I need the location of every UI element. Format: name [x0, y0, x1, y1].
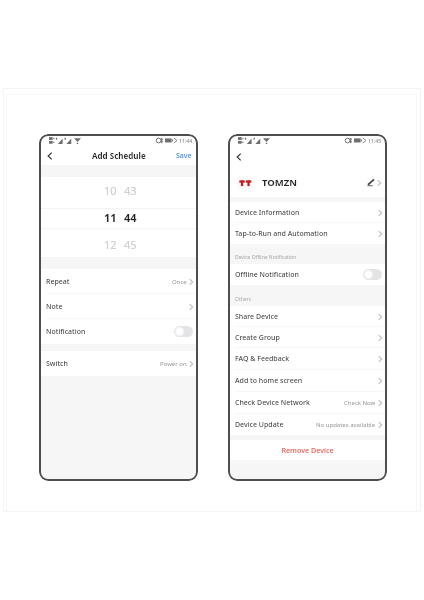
staticText: 12	[104, 237, 117, 252]
staticText: Save	[176, 151, 192, 161]
staticText: Power on	[160, 360, 187, 368]
button[interactable]: Remove Device	[228, 440, 387, 460]
staticText: Offline Notification	[235, 270, 299, 280]
button[interactable]: Toggle	[363, 269, 382, 280]
staticText: 44	[124, 210, 137, 225]
staticText: Device Offline Notification	[235, 254, 297, 261]
button[interactable]: Toggle	[174, 326, 193, 337]
staticText: Tap-to-Run and Automation	[235, 229, 328, 239]
staticText: 43	[124, 183, 137, 198]
button[interactable]: Save	[170, 148, 198, 164]
staticText: No updates available	[316, 421, 376, 429]
button[interactable]: Switch	[39, 351, 198, 376]
staticText: Notification	[46, 327, 86, 337]
button[interactable]: Offline Notification	[228, 264, 387, 285]
button[interactable]: Create Group	[228, 327, 387, 348]
staticText: 11:45	[368, 137, 382, 144]
staticText: Device Information	[235, 208, 300, 218]
staticText: Share Device	[235, 312, 278, 322]
button[interactable]: Add to home screen	[228, 370, 387, 392]
staticText: TOMZN	[262, 176, 297, 189]
staticText: Others	[235, 296, 252, 303]
button[interactable]: Back	[234, 150, 244, 164]
button[interactable]: Check Device Network	[228, 392, 387, 414]
button[interactable]: FAQ & Feedback	[228, 348, 387, 370]
staticText: Add Schedule	[92, 150, 146, 161]
staticText: 10	[104, 183, 117, 198]
staticText: Switch	[46, 359, 68, 369]
staticText: Remove Device	[281, 445, 334, 455]
staticText: Create Group	[235, 333, 280, 343]
staticText: Add to home screen	[235, 376, 303, 386]
staticText: 11:44	[179, 137, 193, 144]
staticText: 45	[124, 237, 137, 252]
button[interactable]: Share Device	[228, 306, 387, 327]
staticText: Check Device Network	[235, 398, 310, 408]
staticText: FAQ & Feedback	[235, 354, 290, 364]
button[interactable]: Repeat	[39, 269, 198, 294]
button[interactable]: Note	[39, 294, 198, 319]
staticText: Check Now	[344, 399, 376, 407]
staticText: Repeat	[46, 277, 70, 287]
button[interactable]: TOMZN	[228, 168, 387, 197]
button[interactable]: Back	[44, 148, 55, 163]
button[interactable]: Notification	[39, 319, 198, 344]
staticText: Note	[46, 302, 63, 312]
button[interactable]: Edit device name	[366, 178, 375, 187]
button[interactable]: Device Update	[228, 414, 387, 435]
staticText: Once	[172, 278, 187, 286]
button[interactable]: Tap-to-Run and Automation	[228, 223, 387, 244]
staticText: Device Update	[235, 420, 284, 430]
staticText: 11	[104, 210, 117, 225]
button[interactable]: Device Information	[228, 202, 387, 223]
